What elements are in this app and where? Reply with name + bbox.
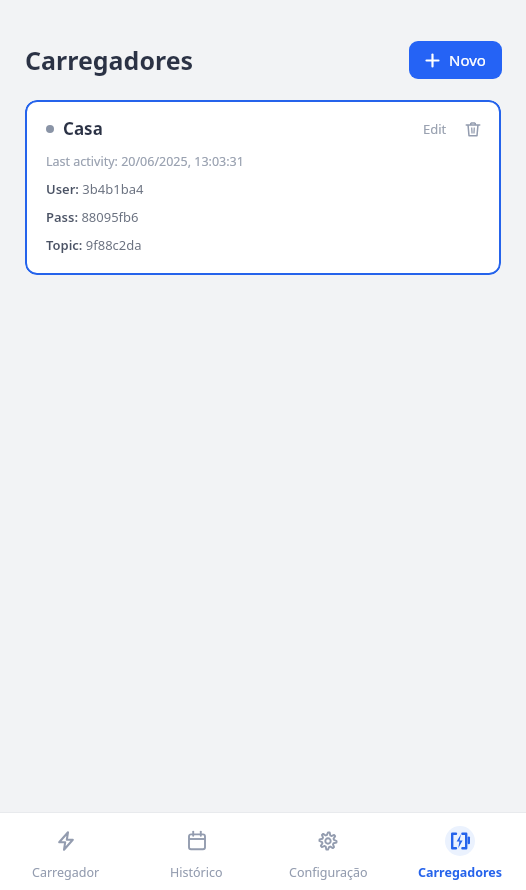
staticText: User: 3b4b1ba4 [46, 180, 144, 198]
staticText: Carregadores [25, 43, 194, 77]
button[interactable]: Carregador [0, 813, 131, 890]
staticText: Carregador [32, 864, 100, 881]
staticText: Topic: 9f88c2da [46, 236, 142, 254]
button[interactable]: Casa [25, 100, 501, 275]
staticText: Edit [423, 120, 447, 138]
button[interactable]: Carregadores [394, 813, 526, 890]
button[interactable]: Histórico [131, 813, 262, 890]
staticText: Casa [63, 117, 103, 140]
staticText: Carregadores [418, 864, 503, 881]
button[interactable]: Configuração [262, 813, 394, 890]
button[interactable]: Edit [419, 118, 451, 140]
staticText: Configuração [289, 864, 368, 881]
staticText: Novo [449, 50, 486, 70]
staticText: Last activity: 20/06/2025, 13:03:31 [46, 153, 244, 170]
staticText: Pass: 88095fb6 [46, 208, 139, 226]
button[interactable]: Novo [409, 41, 502, 79]
staticText: Histórico [170, 864, 223, 881]
button[interactable]: Delete [462, 118, 484, 140]
